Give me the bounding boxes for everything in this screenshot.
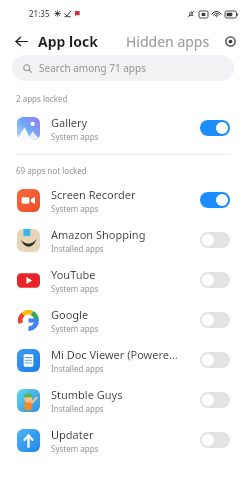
- staticText: Gallery: [51, 115, 88, 130]
- staticText: System apps: [51, 203, 99, 214]
- button[interactable]: Lock off: [200, 392, 230, 408]
- button[interactable]: Back: [10, 30, 32, 52]
- staticText: Amazon Shopping: [51, 227, 146, 242]
- button[interactable]: Screen Recorder: [0, 180, 246, 220]
- staticText: 2 apps locked: [16, 93, 68, 104]
- button[interactable]: Lock off: [200, 312, 230, 328]
- staticText: Installed apps: [51, 243, 104, 254]
- button[interactable]: Google: [0, 300, 246, 340]
- button[interactable]: Search among 71 apps: [12, 55, 234, 81]
- staticText: Installed apps: [51, 403, 104, 414]
- button[interactable]: Stumble Guys: [0, 380, 246, 420]
- staticText: Installed apps: [51, 363, 104, 374]
- button[interactable]: Hidden apps: [126, 32, 210, 51]
- staticText: Hidden apps: [126, 32, 210, 51]
- staticText: Updater: [51, 427, 94, 442]
- staticText: YouTube: [51, 267, 96, 282]
- staticText: 69 apps not locked: [16, 165, 87, 176]
- button[interactable]: Lock off: [200, 272, 230, 288]
- button[interactable]: App lock: [38, 32, 98, 51]
- button[interactable]: Mi Doc Viewer (Powere…: [0, 340, 246, 380]
- staticText: Search among 71 apps: [39, 61, 146, 75]
- staticText: 21:35: [29, 8, 50, 19]
- staticText: System apps: [51, 283, 99, 294]
- staticText: Mi Doc Viewer (Powere…: [51, 347, 178, 362]
- button[interactable]: Amazon Shopping: [0, 220, 246, 260]
- button[interactable]: Lock on: [200, 192, 230, 208]
- staticText: System apps: [51, 131, 99, 142]
- staticText: Google: [51, 307, 89, 322]
- button[interactable]: Settings: [220, 31, 240, 51]
- button[interactable]: Lock on: [200, 120, 230, 136]
- staticText: Screen Recorder: [51, 187, 136, 202]
- button[interactable]: Gallery: [0, 108, 246, 148]
- button[interactable]: Lock off: [200, 232, 230, 248]
- button[interactable]: Lock off: [200, 352, 230, 368]
- button[interactable]: Updater: [0, 420, 246, 460]
- button[interactable]: YouTube: [0, 260, 246, 300]
- staticText: System apps: [51, 443, 99, 454]
- staticText: App lock: [38, 32, 98, 51]
- button[interactable]: Lock off: [200, 432, 230, 448]
- staticText: Stumble Guys: [51, 387, 123, 402]
- staticText: System apps: [51, 323, 99, 334]
